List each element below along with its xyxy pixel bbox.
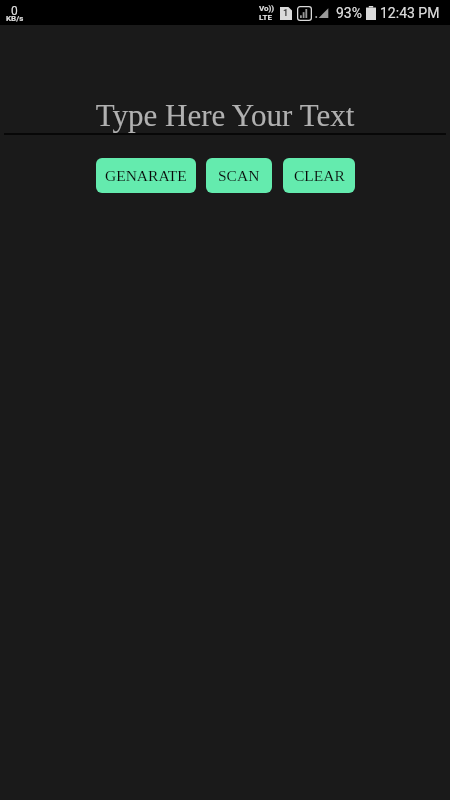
other: Battery 93 percent (366, 6, 376, 20)
other: Mobile signal SIM 2 (297, 6, 312, 21)
staticText: LTE (259, 13, 272, 22)
button[interactable]: GENARATE (96, 158, 196, 193)
staticText: CLEAR (294, 167, 345, 184)
other: Mobile signal SIM 1 (315, 6, 329, 21)
button[interactable]: Type Here Your Text (0, 78, 450, 135)
button[interactable]: SCAN (206, 158, 272, 193)
staticText: 0 (11, 4, 18, 18)
staticText: 1 (283, 8, 289, 19)
staticText: GENARATE (105, 167, 187, 184)
other: SIM 1 (280, 7, 292, 20)
staticText: Type Here Your Text (0, 98, 450, 132)
staticText: 12:43 PM (380, 5, 440, 21)
staticText: 93% (336, 5, 362, 21)
staticText: Vo)) (259, 4, 275, 13)
staticText: KB/s (6, 14, 24, 23)
button[interactable]: CLEAR (283, 158, 355, 193)
staticText: SCAN (218, 167, 260, 184)
